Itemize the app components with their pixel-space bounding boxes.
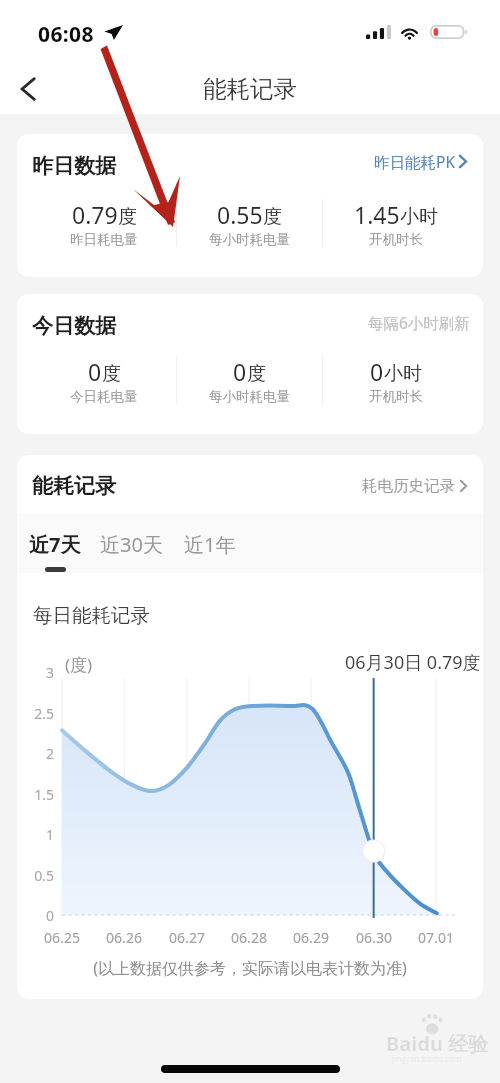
staticText: 度 bbox=[102, 362, 121, 386]
staticText: 2.5 bbox=[17, 704, 54, 723]
staticText: 能耗记录 bbox=[203, 74, 297, 104]
staticText: 度 bbox=[118, 205, 137, 229]
staticText: 开机时长 bbox=[369, 388, 423, 405]
staticText: 每小时耗电量 bbox=[209, 388, 290, 405]
staticText: 近30天 bbox=[100, 531, 163, 558]
staticText: 06.27 bbox=[157, 928, 217, 947]
button[interactable]: 近30天 bbox=[100, 514, 163, 572]
staticText: Baidu 经验 bbox=[386, 1030, 489, 1057]
staticText: 能耗记录 bbox=[32, 473, 116, 499]
staticText: 1 bbox=[17, 825, 54, 844]
staticText: 0.5 bbox=[17, 866, 54, 885]
button[interactable]: 昨日能耗PK bbox=[374, 156, 467, 177]
staticText: 1.45 bbox=[354, 199, 400, 230]
staticText: 1.5 bbox=[17, 785, 54, 804]
staticText: 近1年 bbox=[184, 531, 236, 558]
staticText: 今日数据 bbox=[32, 313, 116, 339]
staticText: 07.01 bbox=[406, 928, 466, 947]
staticText: 每隔6小时刷新 bbox=[368, 312, 470, 333]
staticText: (以上数据仅供参考，实际请以电表计数为准) bbox=[17, 957, 483, 979]
staticText: (度) bbox=[65, 653, 93, 676]
staticText: 0 bbox=[233, 356, 247, 387]
staticText: 度 bbox=[263, 205, 282, 229]
staticText: 0 bbox=[370, 356, 384, 387]
staticText: 06.25 bbox=[32, 928, 92, 947]
staticText: 06.26 bbox=[94, 928, 154, 947]
staticText: 每日能耗记录 bbox=[33, 603, 150, 628]
button[interactable]: 近7天 bbox=[29, 514, 81, 572]
staticText: 昨日能耗PK bbox=[374, 151, 455, 172]
staticText: 今日耗电量 bbox=[70, 388, 138, 405]
button[interactable]: 耗电历史记录 bbox=[362, 476, 467, 496]
staticText: 2 bbox=[17, 744, 54, 763]
staticText: 度 bbox=[247, 362, 266, 386]
staticText: 06月30日 0.79度 bbox=[345, 650, 481, 675]
staticText: 昨日数据 bbox=[32, 153, 116, 179]
staticText: 06.29 bbox=[281, 928, 341, 947]
staticText: 0 bbox=[88, 356, 102, 387]
staticText: 耗电历史记录 bbox=[362, 476, 455, 496]
staticText: 近7天 bbox=[29, 531, 81, 558]
staticText: 昨日耗电量 bbox=[70, 231, 138, 248]
staticText: 06.28 bbox=[219, 928, 279, 947]
button[interactable]: 近1年 bbox=[184, 514, 236, 572]
staticText: 开机时长 bbox=[369, 231, 423, 248]
staticText: 小时 bbox=[400, 205, 438, 229]
staticText: 06:08 bbox=[38, 20, 94, 49]
staticText: 小时 bbox=[384, 362, 422, 386]
staticText: jingyan.baidu.com bbox=[392, 1053, 462, 1064]
staticText: 0.55 bbox=[217, 199, 263, 230]
staticText: 0 bbox=[17, 906, 54, 925]
button[interactable]: Back bbox=[5, 66, 51, 112]
staticText: 每小时耗电量 bbox=[209, 231, 290, 248]
staticText: 06.30 bbox=[344, 928, 404, 947]
staticText: 0.79 bbox=[72, 199, 118, 230]
staticText: 3 bbox=[17, 663, 54, 682]
